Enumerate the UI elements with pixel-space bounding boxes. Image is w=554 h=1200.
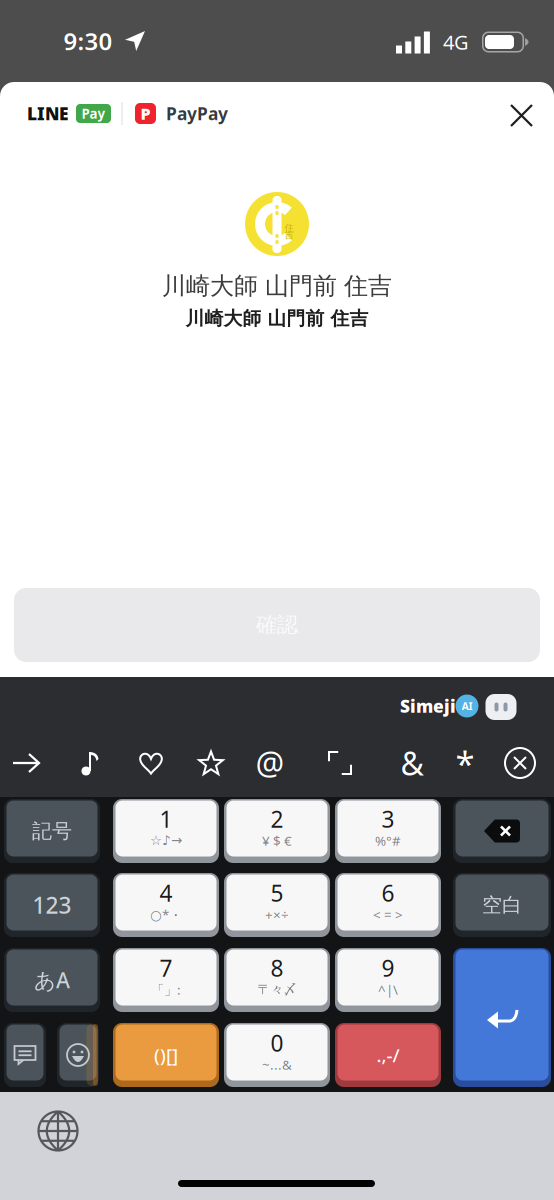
button[interactable]: Ampersand	[390, 741, 434, 785]
button[interactable]: ()[]	[113, 1023, 219, 1087]
staticText: *	[455, 740, 474, 786]
staticText: ☆♪→	[150, 833, 182, 848]
staticText: 7	[159, 953, 172, 983]
staticText: 123	[32, 890, 71, 920]
button[interactable]: 7	[113, 948, 219, 1012]
button[interactable]: 123	[4, 873, 100, 937]
staticText: 記号	[32, 819, 72, 843]
staticText: Simeji	[400, 694, 456, 717]
staticText: ^|\	[378, 981, 398, 998]
staticText: LINE	[27, 102, 69, 125]
staticText: Pay	[81, 105, 105, 122]
button[interactable]: Return	[453, 948, 551, 1087]
staticText: 4G	[443, 29, 469, 55]
staticText: 2	[270, 804, 283, 834]
staticText: 9:30	[63, 25, 112, 57]
staticText: ~...&	[262, 1056, 292, 1073]
button[interactable]: 6	[335, 873, 441, 937]
button[interactable]: Forward	[4, 741, 48, 785]
staticText: +×÷	[265, 906, 289, 923]
staticText: 4	[159, 878, 172, 908]
staticText: 吉	[284, 229, 293, 241]
staticText: 空白	[482, 893, 522, 917]
staticText: 6	[381, 878, 394, 908]
button[interactable]: 0	[224, 1023, 330, 1087]
staticText: あA	[34, 966, 70, 994]
staticText: 0	[270, 1028, 283, 1058]
staticText: @	[255, 742, 284, 784]
button[interactable]: Asterisk	[443, 741, 487, 785]
button[interactable]: 1	[113, 799, 219, 863]
button[interactable]: Music note	[68, 741, 112, 785]
staticText: 5	[270, 878, 283, 908]
staticText: 〒々〆	[257, 981, 296, 998]
staticText: 9	[381, 953, 394, 983]
staticText: AI	[461, 699, 472, 713]
button[interactable]: 5	[224, 873, 330, 937]
button[interactable]: Star	[189, 741, 233, 785]
button[interactable]: 9	[335, 948, 441, 1012]
staticText: 住	[284, 222, 293, 234]
button[interactable]: Next keyboard	[29, 1102, 86, 1159]
staticText: 1	[159, 804, 172, 834]
staticText: .,-/	[376, 1043, 399, 1067]
button[interactable]: Close	[501, 95, 542, 136]
button[interactable]: At sign	[248, 741, 292, 785]
staticText: PayPay	[166, 102, 228, 125]
staticText: 3	[381, 804, 394, 834]
staticText: &	[400, 742, 423, 784]
button[interactable]: .,-/	[335, 1023, 441, 1087]
button[interactable]: Dismiss keyboard	[498, 741, 542, 785]
button[interactable]: Emoji	[57, 1023, 99, 1087]
button[interactable]: 3	[335, 799, 441, 863]
staticText: 確認	[256, 612, 298, 638]
button[interactable]: 8	[224, 948, 330, 1012]
button[interactable]: Brackets	[318, 741, 362, 785]
staticText: 「」:	[151, 981, 181, 998]
button[interactable]: Simeji assistant	[485, 694, 516, 720]
staticText: 川崎大師 山門前 住吉	[185, 307, 368, 330]
staticText: ¥ $ €	[262, 832, 292, 849]
staticText: ()[]	[154, 1043, 178, 1067]
button[interactable]: 4	[113, 873, 219, 937]
staticText: %°#	[375, 832, 401, 849]
button[interactable]: 記号	[4, 799, 100, 863]
button[interactable]: Delete	[453, 799, 551, 863]
button[interactable]: Stickers	[4, 1023, 46, 1087]
button[interactable]: 2	[224, 799, 330, 863]
staticText: < = >	[373, 906, 403, 923]
button[interactable]: あA	[4, 948, 100, 1012]
button[interactable]: 空白	[453, 873, 551, 937]
staticText: P	[140, 103, 150, 124]
staticText: 川崎大師 山門前 住吉	[162, 271, 392, 301]
staticText: ○*・	[150, 906, 182, 923]
staticText: 8	[270, 953, 283, 983]
button[interactable]: Heart	[129, 741, 173, 785]
